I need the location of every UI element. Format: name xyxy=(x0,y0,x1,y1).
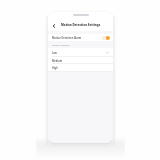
staticText: Motion Detection Settings xyxy=(61,23,101,27)
button[interactable]: Medium xyxy=(48,56,113,64)
button[interactable]: Motion Detection Alarm xyxy=(48,34,113,41)
button[interactable]: High xyxy=(48,63,113,71)
staticText: Low xyxy=(52,51,57,54)
button[interactable]: Back xyxy=(50,22,57,29)
staticText: High xyxy=(52,66,58,69)
staticText: Motion Detection Alarm xyxy=(52,36,82,39)
staticText: Medium xyxy=(52,59,63,62)
staticText: Motion Sensitivity xyxy=(52,44,70,47)
button[interactable]: Low xyxy=(48,48,113,56)
